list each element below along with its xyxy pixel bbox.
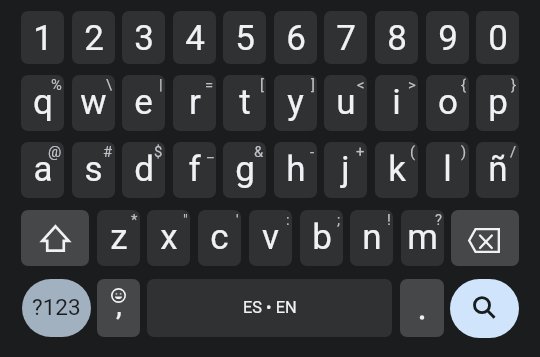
button[interactable]: s: [72, 142, 115, 198]
staticText: m: [407, 217, 438, 258]
button[interactable]: q: [21, 75, 64, 131]
button[interactable]: 7: [324, 11, 367, 64]
button[interactable]: o: [426, 75, 469, 131]
button[interactable]: n: [350, 210, 393, 266]
staticText: o: [438, 82, 458, 123]
staticText: 1: [33, 18, 53, 59]
staticText: &: [254, 143, 264, 160]
staticText: |: [159, 76, 163, 93]
staticText: p: [488, 82, 508, 123]
staticText: [: [260, 76, 264, 93]
staticText: 4: [185, 18, 205, 59]
staticText: #: [103, 143, 113, 160]
button[interactable]: m: [401, 210, 444, 266]
button[interactable]: ES • EN: [147, 279, 392, 337]
button[interactable]: k: [375, 142, 418, 198]
button[interactable]: 2: [72, 11, 115, 64]
staticText: a: [33, 149, 53, 190]
staticText: s: [84, 149, 103, 190]
button[interactable]: b: [300, 210, 343, 266]
button[interactable]: f: [173, 142, 216, 198]
staticText: f: [188, 149, 201, 190]
staticText: ": [183, 211, 188, 228]
button[interactable]: Period: [400, 279, 444, 337]
staticText: w: [80, 82, 107, 123]
staticText: 9: [438, 18, 458, 59]
staticText: }: [511, 76, 517, 93]
button[interactable]: e: [122, 75, 165, 131]
button[interactable]: t: [223, 75, 266, 131]
staticText: h: [286, 149, 306, 190]
staticText: ES • EN: [243, 298, 297, 317]
staticText: @: [48, 143, 62, 160]
button[interactable]: 3: [122, 11, 165, 64]
staticText: 2: [84, 18, 104, 59]
button[interactable]: z: [97, 210, 140, 266]
button[interactable]: w: [72, 75, 115, 131]
button[interactable]: 5: [223, 11, 266, 64]
staticText: \: [106, 76, 113, 93]
button[interactable]: y: [274, 75, 317, 131]
staticText: %: [51, 76, 62, 93]
staticText: 5: [235, 18, 255, 59]
staticText: ;: [337, 211, 341, 228]
staticText: g: [235, 149, 255, 190]
staticText: {: [461, 76, 467, 93]
button[interactable]: 0: [476, 11, 519, 64]
staticText: u: [336, 82, 356, 123]
button[interactable]: l: [426, 142, 469, 198]
staticText: 7: [336, 18, 356, 59]
staticText: ,: [116, 287, 122, 322]
staticText: +: [356, 143, 365, 160]
button[interactable]: x: [147, 210, 190, 266]
staticText: *: [131, 211, 138, 228]
button[interactable]: c: [198, 210, 241, 266]
staticText: /: [510, 143, 517, 160]
button[interactable]: v: [249, 210, 292, 266]
staticText: k: [388, 149, 406, 190]
staticText: r: [189, 82, 201, 123]
button[interactable]: i: [375, 75, 418, 131]
staticText: 6: [286, 18, 306, 59]
staticText: (: [410, 143, 416, 160]
staticText: 0: [488, 18, 508, 59]
staticText: c: [210, 217, 229, 258]
button[interactable]: g: [223, 142, 266, 198]
button[interactable]: 1: [21, 11, 64, 64]
button[interactable]: ?123: [22, 279, 91, 337]
button[interactable]: j: [324, 142, 367, 198]
staticText: :: [286, 211, 290, 228]
button[interactable]: h: [274, 142, 317, 198]
button[interactable]: p: [476, 75, 519, 131]
staticText: _: [207, 143, 214, 160]
staticText: z: [110, 217, 128, 258]
button[interactable]: ñ: [476, 142, 519, 198]
staticText: v: [262, 217, 279, 258]
staticText: ]: [311, 76, 315, 93]
staticText: d: [134, 149, 154, 190]
button[interactable]: 4: [173, 11, 216, 64]
button[interactable]: Backspace: [451, 210, 519, 266]
button[interactable]: Search: [450, 279, 519, 338]
staticText: ): [461, 143, 467, 160]
staticText: x: [160, 217, 178, 258]
staticText: n: [362, 217, 382, 258]
staticText: i: [392, 82, 401, 123]
button[interactable]: a: [21, 142, 64, 198]
staticText: e: [134, 82, 153, 123]
button[interactable]: 9: [426, 11, 469, 64]
button[interactable]: Shift: [21, 210, 89, 266]
button[interactable]: r: [173, 75, 216, 131]
staticText: >: [408, 76, 416, 93]
button[interactable]: u: [324, 75, 367, 131]
staticText: y: [287, 82, 304, 123]
staticText: !: [387, 211, 391, 228]
button[interactable]: Emoji: [97, 279, 140, 337]
staticText: b: [312, 217, 332, 258]
staticText: q: [33, 82, 53, 123]
button[interactable]: 8: [375, 11, 418, 64]
staticText: $: [154, 143, 163, 160]
button[interactable]: d: [122, 142, 165, 198]
button[interactable]: 6: [274, 11, 317, 64]
staticText: ': [236, 211, 239, 228]
